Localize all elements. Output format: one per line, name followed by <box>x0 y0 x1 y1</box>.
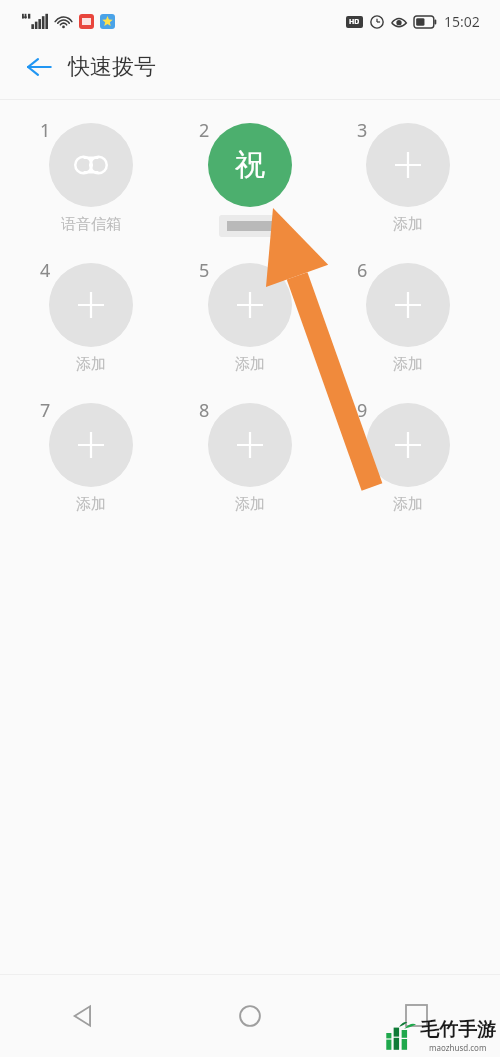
staticText: 快速拨号 <box>68 53 156 81</box>
staticText: maozhusd.com <box>429 1042 487 1053</box>
button[interactable]: Home <box>166 974 333 1057</box>
staticText: 祝 <box>235 146 265 184</box>
staticText: 2 <box>199 118 210 143</box>
staticText: 添加 <box>39 355 143 374</box>
staticText: 3 <box>357 118 368 143</box>
button[interactable]: 添加 <box>356 403 460 514</box>
staticText: 毛竹手游 <box>420 1018 496 1042</box>
button[interactable]: Recents <box>333 974 500 1057</box>
staticText: 1 <box>40 118 51 143</box>
staticText: 添加 <box>39 495 143 514</box>
staticText: 添加 <box>198 355 302 374</box>
staticText: 添加 <box>356 355 460 374</box>
staticText: 8 <box>199 398 210 423</box>
button[interactable]: 添加 <box>356 263 460 374</box>
staticText: 添加 <box>356 495 460 514</box>
staticText: 语音信箱 <box>39 215 143 234</box>
staticText: 添加 <box>198 495 302 514</box>
staticText: 添加 <box>356 215 460 234</box>
staticText: 7 <box>40 398 51 423</box>
button[interactable]: Back <box>0 974 166 1057</box>
button[interactable]: 祝 <box>198 123 302 237</box>
staticText: HD <box>349 17 360 27</box>
staticText: 6 <box>357 258 368 283</box>
button[interactable]: 语音信箱 <box>39 123 143 234</box>
button[interactable]: 添加 <box>198 263 302 374</box>
button[interactable]: 添加 <box>356 123 460 234</box>
button[interactable]: 添加 <box>39 403 143 514</box>
button[interactable]: 添加 <box>198 403 302 514</box>
staticText: 15:02 <box>444 12 480 31</box>
staticText: 4 <box>40 258 51 283</box>
button[interactable]: Back <box>16 44 62 90</box>
staticText: 9 <box>357 398 368 423</box>
button[interactable]: 添加 <box>39 263 143 374</box>
staticText: 5 <box>199 258 210 283</box>
